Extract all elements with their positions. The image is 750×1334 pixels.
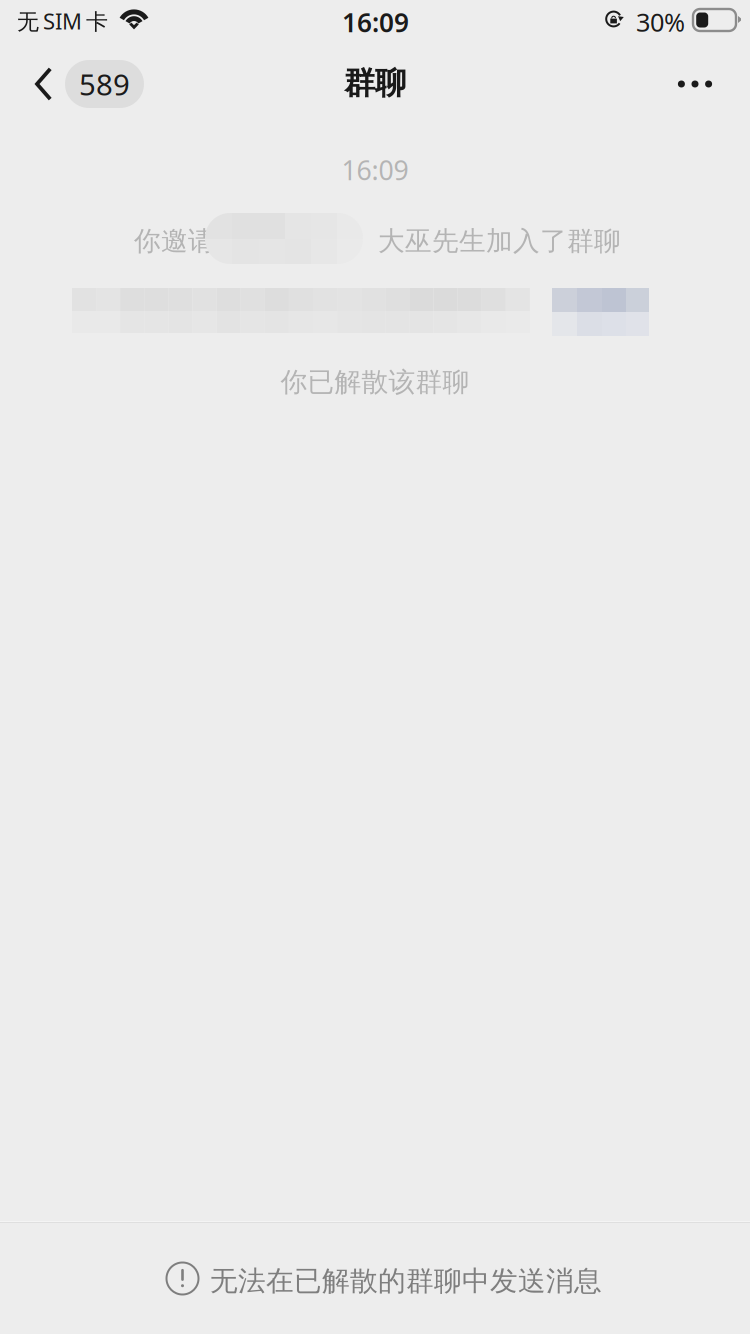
staticText: 你已解散该群聊	[280, 365, 469, 399]
staticText: 589	[79, 64, 130, 104]
staticText: 30%	[636, 5, 685, 39]
staticText: 无法在已解散的群聊中发送消息	[210, 1264, 602, 1298]
staticText: 16:09	[341, 152, 408, 188]
staticText: 你邀请	[134, 224, 215, 258]
button[interactable]: 更多	[657, 47, 733, 121]
staticText: 16:09	[342, 4, 409, 40]
staticText: 群聊	[344, 63, 406, 103]
staticText: 大巫先生加入了群聊	[378, 224, 621, 258]
button[interactable]: 返回 589	[0, 54, 162, 128]
staticText: 无 SIM 卡	[17, 6, 108, 36]
